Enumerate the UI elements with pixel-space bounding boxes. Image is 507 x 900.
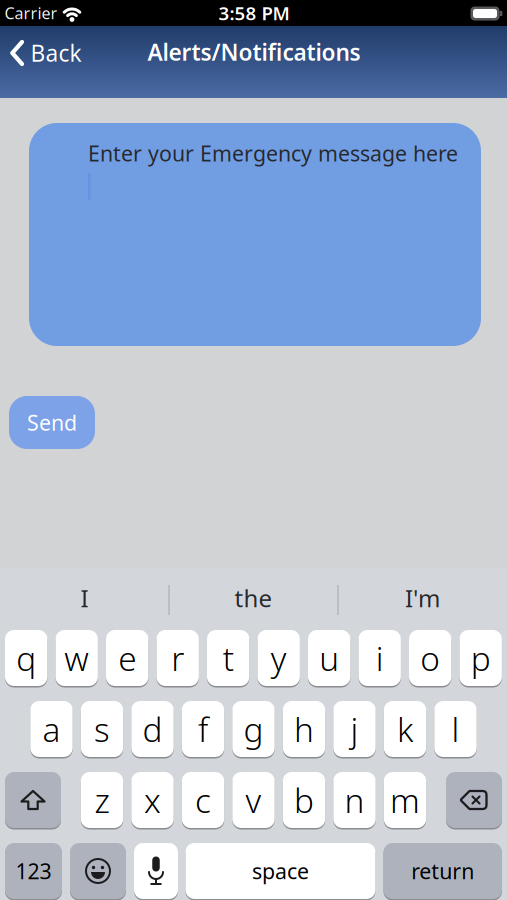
button[interactable]: I'm [342, 570, 502, 626]
staticText: n [344, 778, 364, 822]
button[interactable]: a [30, 699, 73, 758]
staticText: return [411, 857, 474, 885]
staticText: the [234, 582, 272, 614]
button[interactable]: e [106, 628, 148, 687]
button[interactable]: h [283, 699, 325, 758]
staticText: Send [27, 408, 77, 437]
button[interactable]: the [173, 570, 333, 626]
staticText: u [319, 636, 339, 680]
button[interactable]: Emoji [70, 841, 126, 900]
staticText: w [64, 636, 89, 680]
button[interactable]: 123 [5, 841, 62, 900]
button[interactable]: u [308, 628, 350, 687]
staticText: 123 [15, 857, 51, 885]
staticText: y [271, 636, 287, 680]
staticText: x [144, 778, 161, 822]
staticText: e [118, 636, 136, 680]
button[interactable]: w [55, 628, 98, 687]
button[interactable]: j [333, 699, 376, 758]
button[interactable]: g [232, 699, 275, 758]
button[interactable]: x [131, 770, 174, 829]
button[interactable]: Emergency message text field [29, 123, 481, 346]
staticText: l [451, 707, 459, 751]
staticText: b [294, 778, 314, 822]
button[interactable]: space [185, 841, 375, 900]
button[interactable]: r [156, 628, 199, 687]
staticText: c [195, 778, 211, 822]
button[interactable]: i [358, 628, 401, 687]
button[interactable]: y [257, 628, 300, 687]
button[interactable]: I [4, 570, 164, 626]
staticText: Alerts/Notifications [147, 37, 360, 67]
button[interactable]: m [384, 770, 426, 829]
button[interactable]: o [409, 628, 451, 687]
staticText: Carrier [4, 2, 57, 24]
button[interactable]: Shift [5, 770, 61, 829]
button[interactable]: Delete [446, 770, 502, 829]
staticText: Enter your Emergency message here [88, 139, 458, 167]
staticText: p [471, 636, 491, 680]
button[interactable]: z [81, 770, 123, 829]
button[interactable]: Send [9, 396, 95, 449]
staticText: k [397, 707, 413, 751]
staticText: space [252, 857, 309, 885]
staticText: t [223, 636, 234, 680]
staticText: h [294, 707, 314, 751]
button[interactable]: v [232, 770, 275, 829]
button[interactable]: n [333, 770, 376, 829]
staticText: j [350, 707, 358, 751]
staticText: r [171, 636, 184, 680]
staticText: m [390, 778, 420, 822]
staticText: Back [30, 38, 81, 68]
staticText: o [420, 636, 440, 680]
staticText: q [16, 636, 36, 680]
button[interactable]: t [207, 628, 249, 687]
button[interactable]: return [383, 841, 502, 900]
staticText: I'm [405, 582, 440, 614]
button[interactable]: s [81, 699, 123, 758]
staticText: a [42, 707, 60, 751]
button[interactable]: k [384, 699, 426, 758]
staticText: v [245, 778, 261, 822]
button[interactable]: Back [10, 38, 81, 68]
staticText: g [243, 707, 263, 751]
staticText: 3:58 PM [218, 1, 289, 25]
button[interactable]: l [434, 699, 477, 758]
staticText: i [376, 636, 384, 680]
staticText: f [198, 707, 208, 751]
button[interactable]: d [131, 699, 174, 758]
button[interactable]: c [182, 770, 224, 829]
staticText: d [142, 707, 162, 751]
staticText: s [94, 707, 110, 751]
staticText: z [94, 778, 109, 822]
button[interactable]: f [182, 699, 224, 758]
button[interactable]: Dictate [134, 841, 178, 900]
button[interactable]: b [283, 770, 325, 829]
button[interactable]: p [459, 628, 502, 687]
staticText: I [80, 582, 88, 614]
button[interactable]: q [5, 628, 47, 687]
